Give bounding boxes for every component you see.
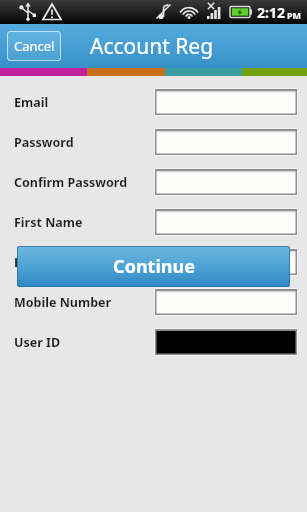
button[interactable]: Email — [0, 82, 307, 122]
button[interactable]: Continue — [17, 246, 290, 287]
staticText: Password — [14, 134, 74, 151]
staticText: Confirm Password — [14, 174, 128, 191]
staticText: Continue — [113, 254, 195, 279]
staticText: Email — [14, 94, 49, 111]
staticText: First Name — [14, 214, 83, 231]
staticText: User ID — [14, 334, 61, 351]
staticText: Last Name — [14, 254, 81, 271]
button[interactable]: User ID — [0, 322, 307, 362]
button[interactable]: Cancel — [7, 31, 61, 61]
staticText: Mobile Number — [14, 294, 112, 311]
button[interactable]: Password — [0, 122, 307, 162]
staticText: 2:12 — [257, 3, 285, 22]
staticText: Cancel — [14, 37, 55, 55]
button[interactable]: Last Name — [0, 242, 307, 282]
button[interactable]: Confirm Password — [0, 162, 307, 202]
staticText: PM — [287, 9, 302, 21]
staticText: Account Reg — [90, 32, 214, 61]
button[interactable]: First Name — [0, 202, 307, 242]
button[interactable]: Mobile Number — [0, 282, 307, 322]
